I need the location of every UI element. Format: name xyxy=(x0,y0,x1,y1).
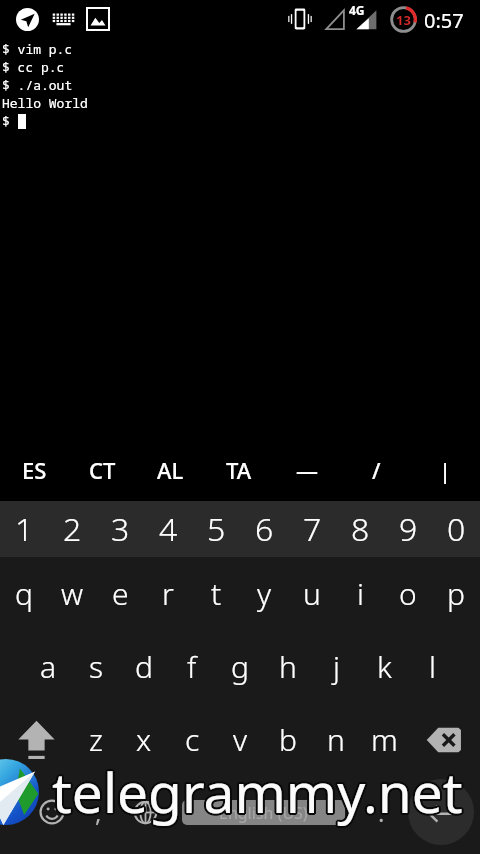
button[interactable]: 2 xyxy=(48,501,96,557)
button[interactable]: English (US) xyxy=(182,800,345,825)
staticText: l xyxy=(429,646,436,687)
staticText: y xyxy=(257,573,272,614)
staticText: English (US) xyxy=(219,802,308,824)
button[interactable]: z xyxy=(72,703,120,776)
button[interactable]: s xyxy=(72,630,120,703)
button[interactable]: v xyxy=(216,703,264,776)
staticText: 7 xyxy=(303,507,322,551)
button[interactable]: q xyxy=(0,557,48,630)
staticText: telegrammy.net xyxy=(52,754,463,829)
button[interactable]: a xyxy=(24,630,72,703)
button[interactable]: j xyxy=(312,630,360,703)
button[interactable]: CT xyxy=(68,439,136,501)
button[interactable]: Change language xyxy=(122,789,168,835)
staticText: 13 xyxy=(396,11,411,29)
staticText: telegrammy.net xyxy=(53,753,464,828)
staticText: telegrammy.net xyxy=(52,753,463,828)
staticText: $ ./a.out xyxy=(2,76,73,94)
button[interactable]: t xyxy=(192,557,240,630)
button[interactable]: , xyxy=(75,789,121,835)
button[interactable]: n xyxy=(312,703,360,776)
button[interactable]: 5 xyxy=(192,501,240,557)
button[interactable]: h xyxy=(264,630,312,703)
staticText: telegrammy.net xyxy=(54,754,465,829)
staticText: k xyxy=(377,646,392,687)
staticText: r xyxy=(162,573,174,614)
staticText: m xyxy=(371,719,398,760)
staticText: 9 xyxy=(399,507,418,551)
staticText: z xyxy=(89,719,103,760)
staticText: telegrammy.net xyxy=(50,754,461,829)
button[interactable]: p xyxy=(432,557,480,630)
staticText: telegrammy.net xyxy=(53,755,464,830)
button[interactable]: d xyxy=(120,630,168,703)
button[interactable]: / xyxy=(342,439,411,501)
button[interactable]: c xyxy=(168,703,216,776)
staticText: i xyxy=(357,573,364,614)
button[interactable]: l xyxy=(408,630,456,703)
staticText: $ cc p.c xyxy=(2,58,65,76)
staticText: q xyxy=(15,573,33,614)
staticText: telegrammy.net xyxy=(51,756,462,831)
staticText: $ vim p.c xyxy=(2,40,73,58)
button[interactable]: i xyxy=(336,557,384,630)
button[interactable]: w xyxy=(48,557,96,630)
staticText: 1 xyxy=(15,507,34,551)
staticText: telegrammy.net xyxy=(53,754,464,829)
staticText: telegrammy.net xyxy=(50,755,461,830)
button[interactable]: . xyxy=(358,789,404,835)
staticText: telegrammy.net xyxy=(50,753,461,828)
button[interactable]: b xyxy=(264,703,312,776)
staticText: 4G xyxy=(349,2,365,18)
staticText: s xyxy=(89,646,104,687)
button[interactable]: Enter xyxy=(408,779,474,845)
button[interactable]: AL xyxy=(136,439,204,501)
button[interactable]: | xyxy=(411,439,480,501)
button[interactable]: o xyxy=(384,557,432,630)
staticText: | xyxy=(439,455,452,485)
staticText: 0 xyxy=(447,507,466,551)
button[interactable]: 6 xyxy=(240,501,288,557)
button[interactable]: — xyxy=(273,439,342,501)
staticText: telegrammy.net xyxy=(54,753,465,828)
button[interactable]: Emoji xyxy=(29,789,75,835)
button[interactable]: m xyxy=(360,703,408,776)
staticText: telegrammy.net xyxy=(53,756,464,831)
button[interactable]: 8 xyxy=(336,501,384,557)
staticText: , xyxy=(95,796,102,829)
button[interactable]: 1 xyxy=(0,501,48,557)
button[interactable]: 7 xyxy=(288,501,336,557)
staticText: telegrammy.net xyxy=(51,752,462,827)
button[interactable]: x xyxy=(120,703,168,776)
button[interactable]: 3 xyxy=(96,501,144,557)
button[interactable]: 0 xyxy=(432,501,480,557)
staticText: 0:57 xyxy=(424,7,464,34)
staticText: 8 xyxy=(351,507,370,551)
staticText: telegrammy.net xyxy=(52,756,463,831)
button[interactable]: 9 xyxy=(384,501,432,557)
button[interactable]: Backspace xyxy=(408,703,480,776)
staticText: ES xyxy=(22,455,47,485)
staticText: telegrammy.net xyxy=(53,752,464,827)
staticText: d xyxy=(135,646,153,687)
button[interactable]: f xyxy=(168,630,216,703)
staticText: j xyxy=(333,646,340,687)
staticText: 5 xyxy=(207,507,226,551)
staticText: telegrammy.net xyxy=(52,752,463,827)
staticText: $ xyxy=(2,112,18,130)
button[interactable]: r xyxy=(144,557,192,630)
staticText: n xyxy=(327,719,345,760)
staticText: 4 xyxy=(159,507,178,551)
staticText: telegrammy.net xyxy=(54,755,465,830)
button[interactable]: Shift xyxy=(0,703,72,776)
button[interactable]: TA xyxy=(204,439,273,501)
button[interactable]: 4 xyxy=(144,501,192,557)
button[interactable]: u xyxy=(288,557,336,630)
staticText: telegrammy.net xyxy=(51,754,462,829)
staticText: h xyxy=(279,646,297,687)
button[interactable]: y xyxy=(240,557,288,630)
button[interactable]: g xyxy=(216,630,264,703)
button[interactable]: ES xyxy=(0,439,68,501)
button[interactable]: k xyxy=(360,630,408,703)
button[interactable]: e xyxy=(96,557,144,630)
